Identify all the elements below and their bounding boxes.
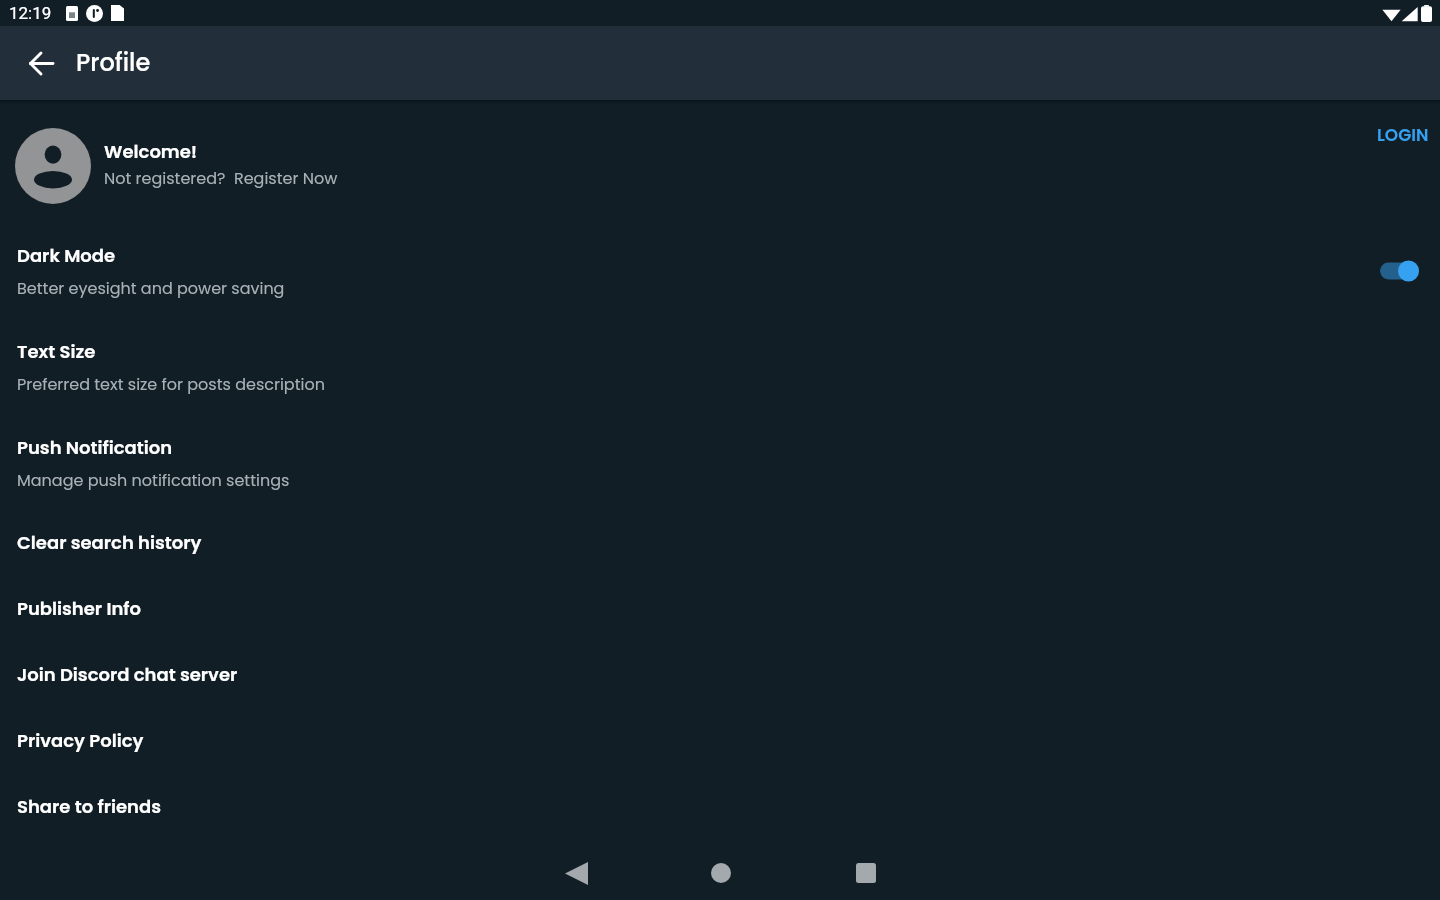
button[interactable]: LOGIN [1369,117,1437,153]
button[interactable]: Back [17,39,65,87]
staticText: LOGIN [1377,123,1429,147]
button[interactable]: Share to friends [0,775,1440,841]
button[interactable]: Dark Mode [0,223,1440,319]
button[interactable]: Home [697,849,745,897]
staticText: Dark Mode [17,243,116,268]
staticText: Welcome! [104,139,198,164]
staticText: Preferred text size for posts descriptio… [17,373,325,395]
button[interactable]: Clear search history [0,511,1440,577]
staticText: Manage push notification settings [17,469,290,491]
button[interactable]: Back [552,849,600,897]
button[interactable]: Join Discord chat server [0,643,1440,709]
staticText: Clear search history [17,530,202,555]
button[interactable]: Privacy Policy [0,709,1440,775]
button[interactable]: Dark Mode toggle [1380,260,1420,282]
staticText: Share to friends [17,794,161,819]
button[interactable]: Recent apps [842,849,890,897]
staticText: Text Size [17,339,96,364]
button[interactable]: Text Size [0,319,1440,415]
staticText: Join Discord chat server [17,662,238,687]
staticText: Not registered? Register Now [104,167,338,189]
button[interactable]: Push Notification [0,415,1440,511]
staticText: Profile [76,46,151,80]
staticText: Better eyesight and power saving [17,277,285,299]
staticText: Push Notification [17,435,173,460]
button[interactable]: Welcome! [0,126,338,202]
staticText: Privacy Policy [17,728,144,753]
button[interactable]: Publisher Info [0,577,1440,643]
staticText: Publisher Info [17,596,142,621]
staticText: 12:19 [9,3,52,23]
